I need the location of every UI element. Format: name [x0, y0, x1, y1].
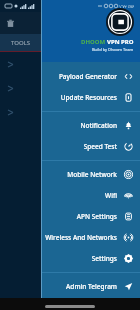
staticText: DHOOM [81, 38, 107, 46]
staticText: Mobile Network [67, 170, 117, 179]
staticText: Settings [91, 254, 117, 263]
button[interactable]: Update Resources [42, 87, 140, 108]
staticText: Payload Generator [58, 72, 117, 81]
button[interactable]: Settings [42, 248, 140, 269]
staticText: Build by Dhoom Team [92, 47, 134, 52]
staticText: Update Resources [60, 93, 117, 102]
button[interactable]: APN Settings [42, 206, 140, 227]
staticText: ۱٬۷۲ ٪۷۶ [119, 4, 135, 9]
button[interactable]: Mobile Network [42, 164, 140, 185]
button[interactable]: Notification [42, 115, 140, 136]
staticText: Admin Telegram [66, 282, 117, 291]
button[interactable]: Wifi [42, 185, 140, 206]
staticText: Notification [80, 121, 117, 130]
staticText: APN Settings [76, 212, 117, 221]
button[interactable]: Payload Generator [42, 66, 140, 87]
staticText: Wifi [105, 191, 117, 200]
staticText: VPN PRO [107, 38, 134, 46]
button[interactable]: Admin Telegram [42, 276, 140, 297]
button[interactable]: Report Telegram [42, 297, 140, 310]
button[interactable]: Speed Test [42, 136, 140, 157]
button[interactable]: Wireless And Networks [42, 227, 140, 248]
staticText: Wireless And Networks [45, 233, 117, 242]
staticText: Speed Test [83, 142, 117, 151]
staticText: TOOLS [11, 39, 31, 47]
staticText: Report Telegram [65, 299, 117, 308]
